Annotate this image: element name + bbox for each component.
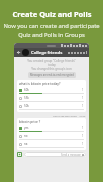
staticText: 60k <box>24 88 29 92</box>
button[interactable]: Group photo <box>22 49 29 56</box>
staticText: Messages are end-to-end encrypted <box>30 73 74 77</box>
button[interactable]: yes <box>19 126 84 132</box>
staticText: 1 <box>82 126 84 130</box>
staticText: na <box>24 142 28 146</box>
button[interactable]: 50k <box>19 104 84 110</box>
staticText: Send a message <box>61 153 81 157</box>
button[interactable]: no <box>19 134 84 140</box>
staticText: bitcoin price ? <box>19 120 41 124</box>
staticText: Create Quiz and Polls <box>12 9 92 19</box>
staticText: Tap to see who voted 10:35 <box>53 114 86 117</box>
button[interactable]: what is bitcoin price today? <box>19 82 84 110</box>
staticText: 1 <box>82 134 84 138</box>
staticText: what is bitcoin price today? <box>19 82 61 86</box>
staticText: 1 <box>82 96 84 100</box>
staticText: today <box>48 63 56 67</box>
button[interactable]: 55k <box>19 96 84 102</box>
button[interactable]: bitcoin price ? <box>19 120 84 148</box>
staticText: Quiz and Polls in Groups <box>18 31 85 39</box>
staticText: You changed this group's icon <box>31 67 72 71</box>
staticText: 1 <box>82 104 84 108</box>
staticText: You created group "College friends" <box>27 59 76 63</box>
button[interactable]: Camera <box>82 154 84 156</box>
staticText: 1 <box>82 142 84 146</box>
button[interactable]: 60k <box>19 88 84 94</box>
staticText: no <box>24 134 28 138</box>
button[interactable]: na <box>19 142 84 148</box>
button[interactable]: Attach <box>17 152 22 157</box>
staticText: yes <box>24 126 29 130</box>
staticText: College friends <box>31 50 63 56</box>
staticText: 1 <box>82 88 84 92</box>
button[interactable]: Back <box>16 50 21 55</box>
button[interactable]: Send a message <box>26 152 84 157</box>
staticText: 50k <box>24 104 29 108</box>
staticText: Now you can create and participate <box>3 22 100 30</box>
staticText: 55k <box>24 96 29 100</box>
